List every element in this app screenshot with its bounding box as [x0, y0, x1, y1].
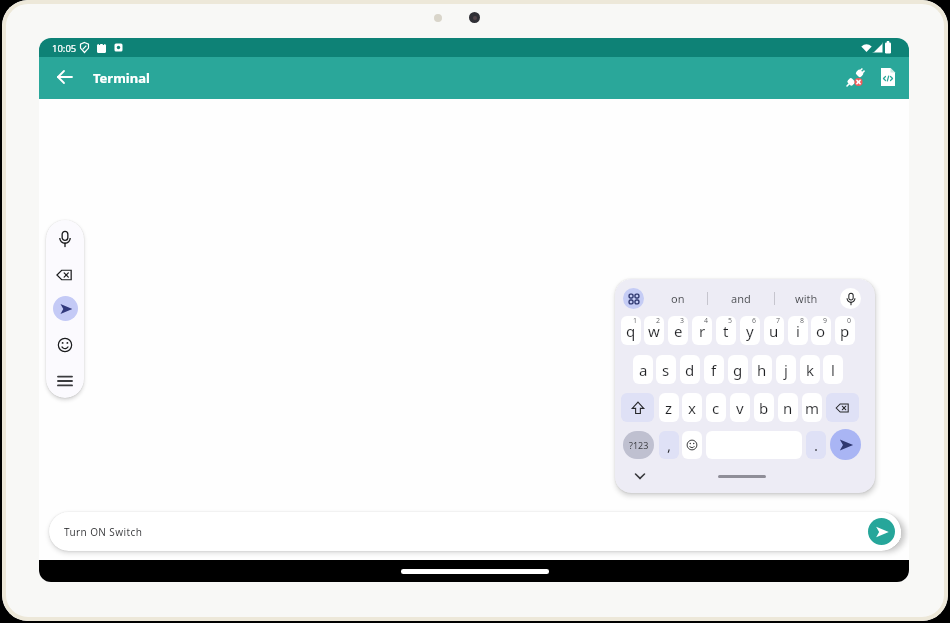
staticText: .: [814, 435, 819, 455]
button[interactable]: [830, 429, 861, 460]
button[interactable]: [623, 288, 644, 309]
button[interactable]: [49, 225, 81, 253]
staticText: r: [699, 321, 706, 341]
staticText: p: [840, 321, 850, 341]
button[interactable]: ,: [659, 431, 679, 459]
button[interactable]: z: [659, 393, 679, 422]
button[interactable]: c: [706, 393, 726, 422]
button[interactable]: Turn ON Switch: [49, 512, 901, 551]
button[interactable]: .: [806, 431, 826, 459]
button[interactable]: g: [728, 355, 748, 384]
button[interactable]: d: [680, 355, 700, 384]
button[interactable]: l: [823, 355, 843, 384]
button[interactable]: t: [716, 316, 736, 345]
button[interactable]: o: [811, 316, 831, 345]
button[interactable]: b: [754, 393, 774, 422]
staticText: x: [688, 398, 696, 418]
button[interactable]: h: [752, 355, 772, 384]
staticText: ,: [667, 435, 672, 455]
staticText: 4: [704, 316, 709, 326]
staticText: m: [805, 398, 820, 418]
staticText: c: [712, 398, 720, 418]
button[interactable]: f: [704, 355, 724, 384]
staticText: n: [783, 398, 793, 418]
button[interactable]: on: [651, 288, 704, 309]
staticText: g: [733, 360, 743, 380]
button[interactable]: [49, 261, 81, 289]
staticText: d: [685, 360, 695, 380]
button[interactable]: [49, 367, 81, 395]
staticText: on: [671, 291, 685, 306]
staticText: 0: [847, 316, 852, 326]
button[interactable]: ?123: [623, 431, 654, 459]
staticText: and: [731, 291, 751, 306]
staticText: 2: [656, 316, 661, 326]
staticText: e: [674, 321, 683, 341]
button[interactable]: q: [621, 316, 641, 345]
staticText: 8: [800, 316, 805, 326]
button[interactable]: u: [764, 316, 784, 345]
button[interactable]: k: [800, 355, 820, 384]
button[interactable]: s: [656, 355, 676, 384]
staticText: f: [711, 360, 717, 380]
staticText: u: [769, 321, 779, 341]
staticText: o: [816, 321, 826, 341]
staticText: k: [806, 360, 815, 380]
staticText: v: [736, 398, 744, 418]
button[interactable]: y: [740, 316, 760, 345]
staticText: 3: [680, 316, 685, 326]
button[interactable]: [39, 560, 909, 582]
button[interactable]: v: [730, 393, 750, 422]
staticText: 10:05: [52, 42, 77, 55]
button[interactable]: [840, 288, 861, 309]
staticText: t: [723, 321, 729, 341]
staticText: j: [784, 360, 788, 380]
staticText: 9: [823, 316, 828, 326]
button[interactable]: e: [668, 316, 688, 345]
button[interactable]: a: [633, 355, 653, 384]
button[interactable]: [843, 66, 867, 90]
staticText: z: [665, 398, 673, 418]
staticText: q: [626, 321, 636, 341]
button[interactable]: r: [692, 316, 712, 345]
button[interactable]: [621, 393, 654, 422]
staticText: 7: [776, 316, 781, 326]
button[interactable]: p: [835, 316, 855, 345]
button[interactable]: j: [776, 355, 796, 384]
staticText: i: [796, 321, 800, 341]
button[interactable]: [53, 65, 77, 89]
staticText: w: [648, 321, 660, 341]
button[interactable]: [49, 331, 81, 359]
staticText: s: [662, 360, 670, 380]
staticText: y: [746, 321, 754, 341]
staticText: Terminal: [93, 69, 150, 87]
staticText: 6: [752, 316, 757, 326]
button[interactable]: m: [802, 393, 822, 422]
button[interactable]: [53, 296, 78, 321]
button[interactable]: and: [711, 288, 771, 309]
button[interactable]: x: [682, 393, 702, 422]
staticText: Turn ON Switch: [64, 525, 143, 539]
button[interactable]: [877, 66, 899, 88]
staticText: ?123: [629, 439, 649, 451]
button[interactable]: [682, 431, 702, 459]
button[interactable]: [868, 518, 895, 545]
button[interactable]: n: [778, 393, 798, 422]
staticText: l: [831, 360, 835, 380]
button[interactable]: with: [778, 288, 834, 309]
staticText: b: [759, 398, 769, 418]
staticText: h: [757, 360, 767, 380]
button[interactable]: [826, 393, 859, 422]
button[interactable]: i: [788, 316, 808, 345]
button[interactable]: w: [644, 316, 664, 345]
staticText: with: [795, 291, 818, 306]
staticText: 5: [728, 316, 733, 326]
staticText: a: [639, 360, 648, 380]
staticText: 1: [633, 316, 638, 326]
button[interactable]: [629, 467, 651, 485]
